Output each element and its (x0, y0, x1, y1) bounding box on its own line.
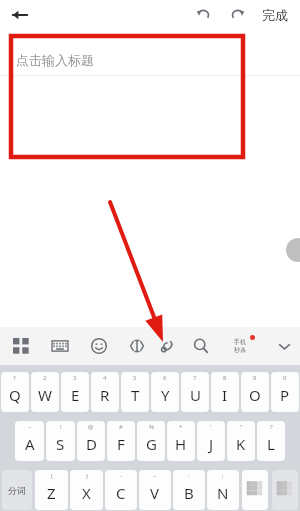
button[interactable]: Back (6, 1, 34, 29)
staticText: P (280, 385, 290, 405)
button[interactable]: ~ (139, 470, 171, 510)
staticText: 3 (73, 374, 77, 382)
staticText: A (25, 434, 35, 454)
button[interactable]: ( (35, 470, 68, 510)
staticText: ? (270, 423, 273, 431)
staticText: X (82, 483, 91, 503)
staticText: # (119, 423, 123, 431)
button[interactable]: 分词 (2, 470, 32, 510)
staticText: 2 (43, 374, 47, 382)
staticText: Z (47, 483, 56, 503)
button[interactable]: % (137, 421, 165, 461)
staticText: 秒杀 (234, 346, 246, 354)
staticText: ' (210, 423, 212, 431)
button[interactable]: Emoji (84, 331, 114, 361)
staticText: T (131, 385, 140, 405)
button[interactable]: 0 (271, 372, 299, 412)
staticText: 完成 (262, 7, 288, 23)
button[interactable]: 手机 (222, 329, 258, 363)
staticText: % (149, 423, 154, 431)
staticText: S (56, 434, 65, 454)
staticText: K (236, 434, 246, 454)
button[interactable]: @ (77, 421, 105, 461)
button[interactable]: Attach (152, 331, 182, 361)
staticText: * (179, 423, 183, 431)
staticText: 7 (193, 374, 197, 382)
staticText: 1 (13, 374, 17, 382)
staticText: @ (88, 423, 94, 431)
button[interactable]: # (107, 421, 135, 461)
staticText: - (120, 472, 122, 480)
staticText: I (222, 385, 228, 405)
button[interactable]: 完成 (256, 3, 294, 27)
staticText: ~ (153, 472, 157, 480)
staticText: N (217, 483, 229, 503)
staticText: 9 (253, 374, 257, 382)
staticText: V (150, 483, 160, 503)
staticText: E (71, 385, 80, 405)
staticText: D (86, 434, 97, 454)
staticText: H (175, 434, 187, 454)
staticText: C (116, 483, 126, 503)
button[interactable]: " (227, 421, 255, 461)
staticText: 分词 (8, 485, 26, 496)
staticText: Q (9, 385, 21, 405)
button[interactable]: 1 (1, 372, 29, 412)
button[interactable]: ; (207, 470, 239, 510)
staticText: R (100, 385, 110, 405)
staticText: J (209, 434, 214, 454)
staticText: ; (222, 472, 224, 480)
button[interactable]: 6 (151, 372, 179, 412)
button[interactable]: 2 (31, 372, 59, 412)
button[interactable] (242, 470, 268, 510)
button[interactable]: 5 (121, 372, 149, 412)
staticText: ~ (28, 423, 32, 431)
button[interactable]: ! (46, 421, 75, 461)
button[interactable]: Keyboard (45, 331, 75, 361)
staticText: ( (51, 472, 53, 480)
staticText: O (249, 385, 261, 405)
button[interactable]: 7 (181, 372, 209, 412)
staticText: " (240, 423, 243, 431)
button[interactable]: Undo (190, 2, 216, 28)
button[interactable]: 点击输入标题 (0, 45, 300, 75)
staticText: W (38, 385, 52, 405)
button[interactable] (272, 470, 298, 510)
staticText: 5 (133, 374, 137, 382)
staticText: 4 (103, 374, 107, 382)
button[interactable]: : (173, 470, 205, 510)
button[interactable]: - (105, 470, 137, 510)
staticText: F (117, 434, 125, 454)
button[interactable]: Floating action (286, 238, 300, 262)
staticText: 0 (283, 374, 287, 382)
staticText: 点击输入标题 (16, 52, 94, 68)
button[interactable]: Search (186, 331, 216, 361)
staticText: Y (161, 385, 170, 405)
button[interactable]: Hide keyboard (272, 334, 296, 358)
staticText: ) (86, 472, 88, 480)
staticText: 8 (223, 374, 227, 382)
button[interactable]: ) (70, 470, 103, 510)
staticText: B (184, 483, 194, 503)
button[interactable]: 4 (91, 372, 119, 412)
button[interactable]: * (167, 421, 195, 461)
button[interactable]: 9 (241, 372, 269, 412)
button[interactable]: ~ (15, 421, 44, 461)
button[interactable]: Panel (6, 331, 36, 361)
staticText: U (190, 385, 201, 405)
button[interactable]: Text (122, 331, 152, 361)
staticText: : (188, 472, 190, 480)
staticText: L (267, 434, 275, 454)
button[interactable]: 8 (211, 372, 239, 412)
staticText: G (146, 434, 157, 454)
staticText: 手机 (234, 338, 246, 346)
button[interactable]: 3 (61, 372, 89, 412)
button[interactable]: ' (197, 421, 225, 461)
button[interactable]: ? (257, 421, 285, 461)
staticText: 6 (163, 374, 167, 382)
button[interactable]: Redo (224, 2, 250, 28)
staticText: ! (60, 423, 62, 431)
